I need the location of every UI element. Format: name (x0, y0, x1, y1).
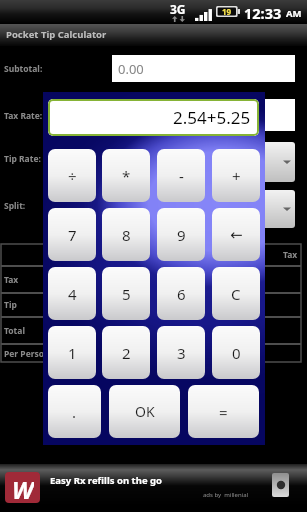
staticText: Tax (283, 249, 298, 261)
staticText: * (122, 166, 131, 186)
button[interactable]: 1 (48, 326, 96, 379)
staticText: 8 (122, 225, 131, 245)
button[interactable]: 0 (212, 326, 260, 379)
button[interactable]: 3 (157, 326, 205, 379)
staticText: Tax Rate: (4, 110, 43, 122)
button[interactable]: Select value (112, 190, 295, 228)
staticText: 19 (222, 6, 232, 17)
staticText: W (12, 473, 34, 503)
button[interactable]: Select value (112, 142, 295, 182)
staticText: = (219, 402, 228, 422)
staticText: . (72, 402, 77, 422)
button[interactable]: 7 (48, 208, 96, 261)
staticText: Tip (4, 299, 17, 311)
staticText: Split: (4, 200, 26, 212)
button[interactable]: C (212, 267, 260, 320)
staticText: 2 (122, 343, 131, 363)
button[interactable]: 4 (48, 267, 96, 320)
button[interactable]: 9 (157, 208, 205, 261)
staticText: OK (135, 402, 155, 421)
staticText: 3 (177, 343, 186, 363)
staticText: 1 (68, 343, 77, 363)
staticText: ÷ (68, 166, 77, 186)
staticText: 5 (122, 284, 131, 304)
button[interactable]: W (0, 464, 307, 506)
staticText: 12:33 (244, 3, 282, 23)
staticText: 3G (170, 1, 186, 17)
button[interactable]: 2 (102, 326, 150, 379)
staticText: ads by millenial (203, 491, 249, 499)
staticText: 6 (177, 284, 186, 304)
button[interactable]: = (188, 385, 259, 438)
staticText: Total (4, 325, 25, 337)
staticText: Tip Rate: (4, 153, 41, 165)
staticText: + (232, 166, 241, 186)
button[interactable]: ÷ (48, 149, 96, 202)
staticText: Pocket Tip Calculator (6, 28, 107, 41)
staticText: Tax (4, 274, 19, 286)
button[interactable]: 5 (102, 267, 150, 320)
staticText: AM (286, 7, 302, 20)
staticText: 4 (68, 284, 77, 304)
staticText: ← (230, 226, 243, 243)
staticText: 0.00 (118, 60, 144, 78)
staticText: 7 (68, 225, 77, 245)
button[interactable]: + (212, 149, 260, 202)
button[interactable]: * (102, 149, 150, 202)
button[interactable]: - (157, 149, 205, 202)
staticText: Subtotal: (4, 63, 43, 75)
button[interactable]: 8 (102, 208, 150, 261)
staticText: C (231, 284, 241, 304)
staticText: 2.54+5.25 (173, 106, 251, 129)
button[interactable]: ← (212, 208, 260, 261)
staticText: Per Person (4, 348, 50, 360)
staticText: - (179, 166, 184, 186)
button[interactable]: OK (109, 385, 180, 438)
staticText: 0 (232, 343, 241, 363)
staticText: Easy Rx refills on the go (50, 474, 162, 487)
button[interactable]: 6 (157, 267, 205, 320)
button[interactable]: . (48, 385, 101, 438)
staticText: 9 (177, 225, 186, 245)
